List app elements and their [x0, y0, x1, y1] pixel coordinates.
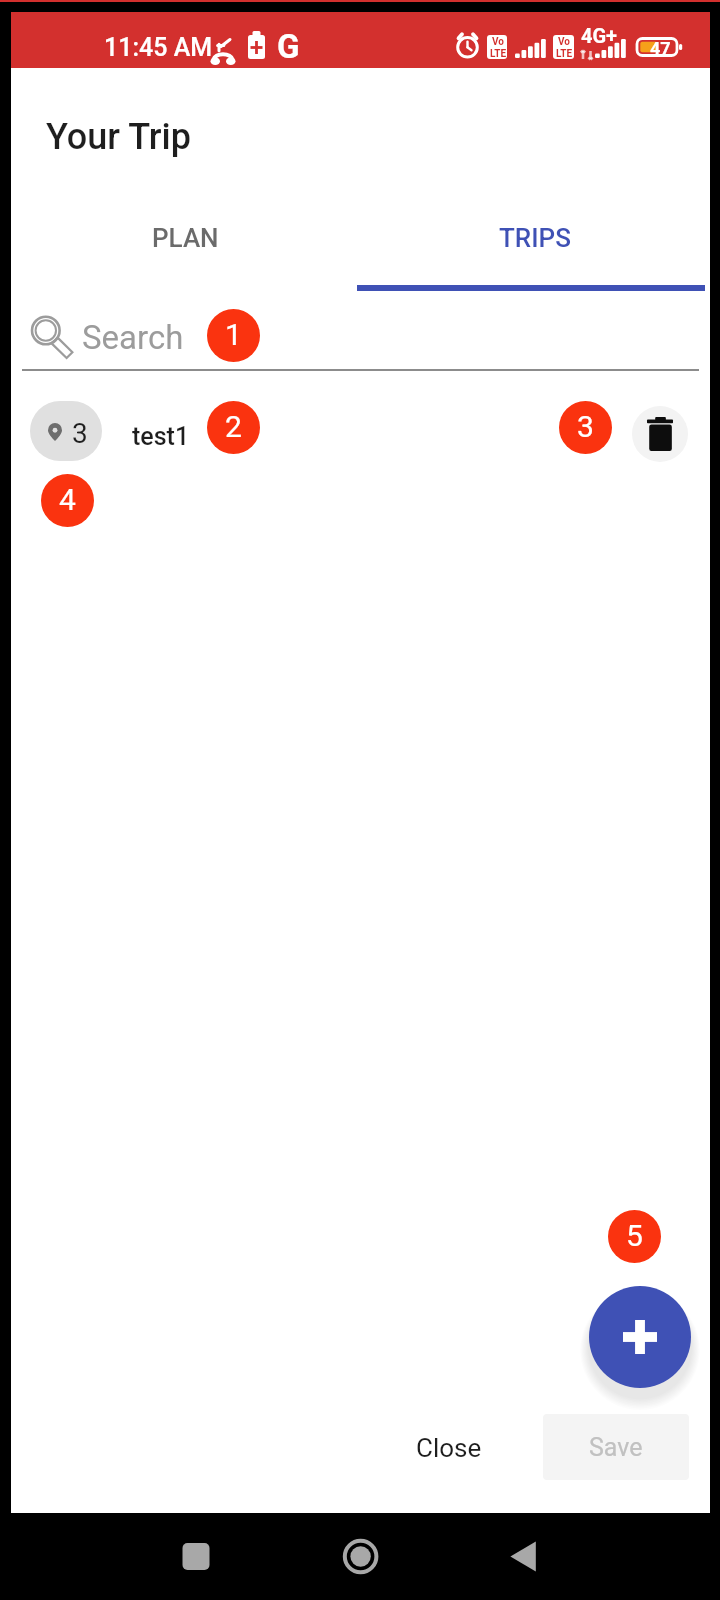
- staticText: 4: [59, 482, 76, 517]
- staticText: Close: [416, 1433, 482, 1463]
- staticText: LTE: [490, 48, 507, 60]
- staticText: Save: [589, 1433, 643, 1462]
- button[interactable]: PLAN: [11, 187, 360, 277]
- staticText: PLAN: [152, 223, 219, 253]
- button[interactable]: 3: [30, 401, 102, 461]
- button[interactable]: Delete trip: [632, 406, 688, 462]
- staticText: 4G+: [581, 24, 618, 47]
- button[interactable]: TRIPS: [360, 187, 710, 277]
- staticText: 5: [626, 1218, 643, 1253]
- staticText: Vo: [558, 36, 570, 48]
- staticText: test1: [132, 422, 190, 451]
- staticText: Vo: [492, 36, 504, 48]
- staticText: 1: [225, 317, 242, 352]
- staticText: 3: [72, 417, 88, 450]
- staticText: 47: [650, 38, 671, 59]
- staticText: 3: [577, 409, 594, 444]
- staticText: TRIPS: [499, 223, 571, 253]
- button[interactable]: Close: [400, 1415, 498, 1481]
- staticText: 2: [225, 409, 242, 444]
- staticText: Your Trip: [46, 116, 191, 158]
- button[interactable]: Save: [543, 1414, 689, 1480]
- staticText: Search: [82, 318, 184, 357]
- staticText: 11:45 AM: [104, 33, 213, 62]
- staticText: G: [277, 27, 300, 66]
- button[interactable]: Add trip: [589, 1286, 691, 1388]
- staticText: LTE: [556, 48, 573, 60]
